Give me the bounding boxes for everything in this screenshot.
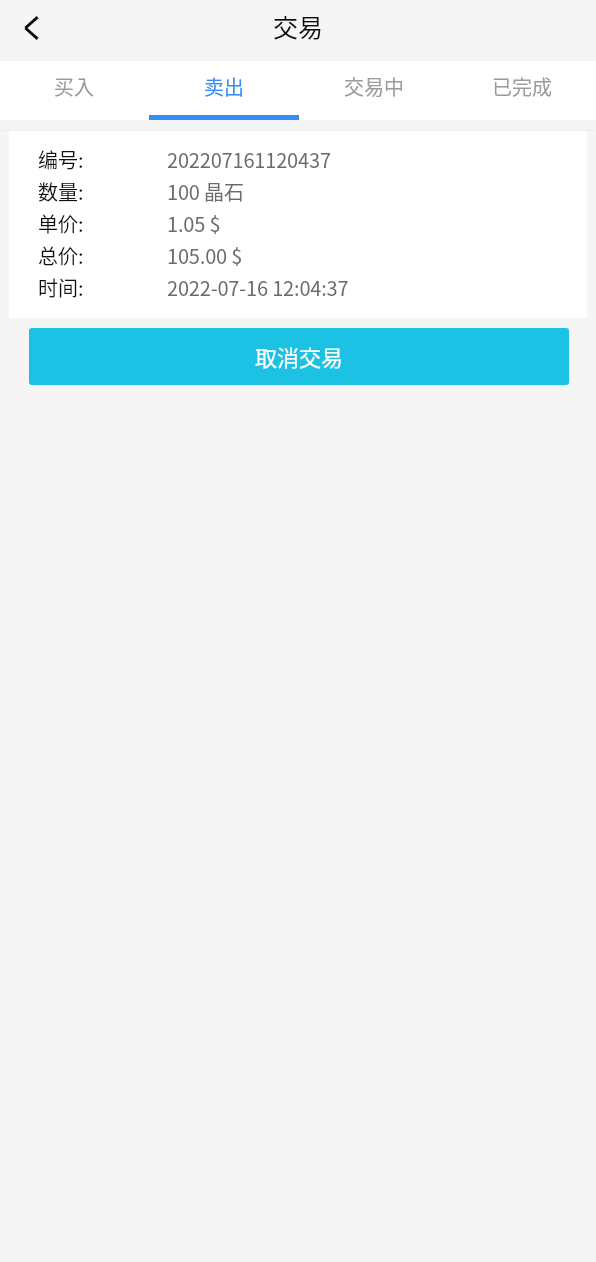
- staticText: 买入: [54, 72, 94, 101]
- staticText: 100 晶石: [167, 177, 244, 206]
- staticText: 编号:: [38, 145, 84, 174]
- staticText: 取消交易: [255, 340, 344, 372]
- button[interactable]: 取消交易: [29, 328, 569, 385]
- button[interactable]: Back: [0, 0, 62, 61]
- button[interactable]: 买入: [0, 61, 149, 120]
- staticText: 已完成: [492, 72, 552, 101]
- staticText: 2022-07-16 12:04:37: [167, 273, 349, 302]
- staticText: 数量:: [38, 177, 84, 206]
- staticText: 202207161120437: [167, 145, 331, 174]
- button[interactable]: 已完成: [449, 61, 595, 120]
- staticText: 单价:: [38, 209, 84, 238]
- button[interactable]: 交易中: [299, 61, 449, 120]
- staticText: 交易中: [344, 72, 404, 101]
- staticText: 卖出: [204, 72, 244, 101]
- button[interactable]: 卖出: [149, 61, 299, 120]
- staticText: 1.05 $: [167, 209, 221, 238]
- staticText: 105.00 $: [167, 241, 243, 270]
- staticText: 交易: [273, 8, 324, 44]
- staticText: 时间:: [38, 273, 84, 302]
- staticText: 总价:: [38, 241, 84, 270]
